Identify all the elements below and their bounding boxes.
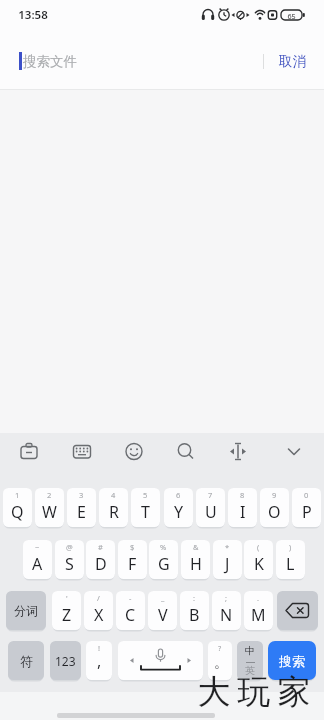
staticText: Z — [62, 604, 72, 626]
button[interactable]: 中 — [237, 641, 263, 680]
staticText: ! — [98, 643, 101, 653]
staticText: 大玩家 — [194, 671, 314, 713]
staticText: S — [65, 553, 74, 575]
staticText: G — [158, 553, 170, 575]
staticText: 5 — [143, 490, 148, 500]
staticText: 0 — [304, 490, 309, 500]
button[interactable] — [118, 641, 203, 680]
staticText: & — [193, 542, 199, 552]
button[interactable]: 搜索文件 — [23, 40, 253, 82]
button[interactable]: 7 — [196, 488, 225, 527]
staticText: X — [94, 604, 104, 626]
staticText: , — [97, 650, 102, 672]
button[interactable]: $ — [118, 540, 147, 579]
staticText: 1 — [15, 490, 20, 500]
button[interactable]: . — [244, 591, 273, 630]
button[interactable]: 搜索 — [268, 641, 316, 680]
staticText: 英 — [245, 664, 255, 677]
button[interactable]: * — [213, 540, 242, 579]
staticText: ; — [225, 593, 228, 603]
staticText: # — [98, 542, 103, 552]
button[interactable]: - — [116, 591, 145, 630]
button[interactable]: _ — [148, 591, 177, 630]
button[interactable]: ' — [52, 591, 81, 630]
staticText: N — [220, 604, 233, 626]
staticText: 7 — [208, 490, 213, 500]
staticText: B — [189, 604, 200, 626]
button[interactable]: 分词 — [6, 591, 46, 630]
button[interactable]: ) — [276, 540, 305, 579]
staticText: I — [240, 501, 246, 523]
staticText: 123 — [55, 653, 76, 669]
staticText: ( — [257, 542, 260, 552]
staticText: J — [225, 553, 230, 575]
staticText: L — [286, 553, 295, 575]
button[interactable]: 2 — [35, 488, 64, 527]
button[interactable]: 8 — [228, 488, 257, 527]
staticText: - — [129, 593, 132, 603]
staticText: P — [302, 501, 312, 523]
staticText: V — [158, 604, 168, 626]
staticText: 6 — [176, 490, 181, 500]
staticText: E — [77, 501, 86, 523]
button[interactable]: ? — [208, 641, 232, 680]
staticText: O — [268, 501, 281, 523]
staticText: 取消 — [279, 53, 306, 70]
staticText: 65 — [287, 11, 296, 21]
button[interactable]: 5 — [131, 488, 160, 527]
staticText: 8 — [240, 490, 245, 500]
button[interactable]: % — [149, 540, 178, 579]
staticText: C — [125, 604, 136, 626]
staticText: D — [95, 553, 107, 575]
button[interactable]: / — [84, 591, 113, 630]
staticText: % — [160, 542, 167, 552]
staticText: M — [251, 604, 266, 626]
button[interactable]: 符 — [8, 641, 44, 680]
staticText: Y — [174, 501, 184, 523]
staticText: 。 — [214, 654, 228, 672]
button[interactable]: # — [86, 540, 115, 579]
button[interactable]: 4 — [99, 488, 128, 527]
staticText: ) — [289, 542, 292, 552]
staticText: * — [225, 542, 230, 552]
button[interactable]: : — [180, 591, 209, 630]
staticText: 4 — [111, 490, 116, 500]
button[interactable]: 9 — [260, 488, 289, 527]
staticText: _ — [161, 593, 165, 603]
staticText: 搜索文件 — [23, 53, 77, 70]
staticText: : — [193, 593, 196, 603]
button[interactable]: 3 — [67, 488, 96, 527]
button[interactable]: 123 — [50, 641, 81, 680]
staticText: / — [97, 593, 100, 603]
staticText: 中 — [245, 644, 255, 657]
staticText: @ — [66, 542, 73, 552]
button[interactable]: 取消 — [270, 47, 314, 75]
staticText: . — [257, 593, 260, 603]
button[interactable] — [0, 433, 324, 483]
staticText: R — [109, 501, 119, 523]
button[interactable]: 0 — [292, 488, 321, 527]
button[interactable]: ! — [86, 641, 112, 680]
staticText: 3 — [79, 490, 84, 500]
button[interactable]: @ — [55, 540, 84, 579]
button[interactable] — [277, 591, 318, 630]
staticText: 2 — [47, 490, 52, 500]
staticText: K — [254, 553, 264, 575]
staticText: ? — [218, 643, 222, 653]
button[interactable]: ; — [212, 591, 241, 630]
staticText: A — [32, 553, 43, 575]
button[interactable]: ~ — [23, 540, 52, 579]
staticText: T — [141, 501, 150, 523]
staticText: 分词 — [14, 603, 38, 618]
staticText: U — [205, 501, 217, 523]
staticText: W — [42, 501, 57, 523]
button[interactable]: ( — [244, 540, 273, 579]
staticText: ' — [66, 593, 68, 603]
button[interactable]: 1 — [3, 488, 32, 527]
staticText: ~ — [35, 542, 40, 552]
staticText: 13:58 — [18, 7, 48, 23]
button[interactable]: 6 — [164, 488, 193, 527]
staticText: 搜索 — [279, 653, 305, 669]
button[interactable]: & — [181, 540, 210, 579]
staticText: F — [128, 553, 137, 575]
